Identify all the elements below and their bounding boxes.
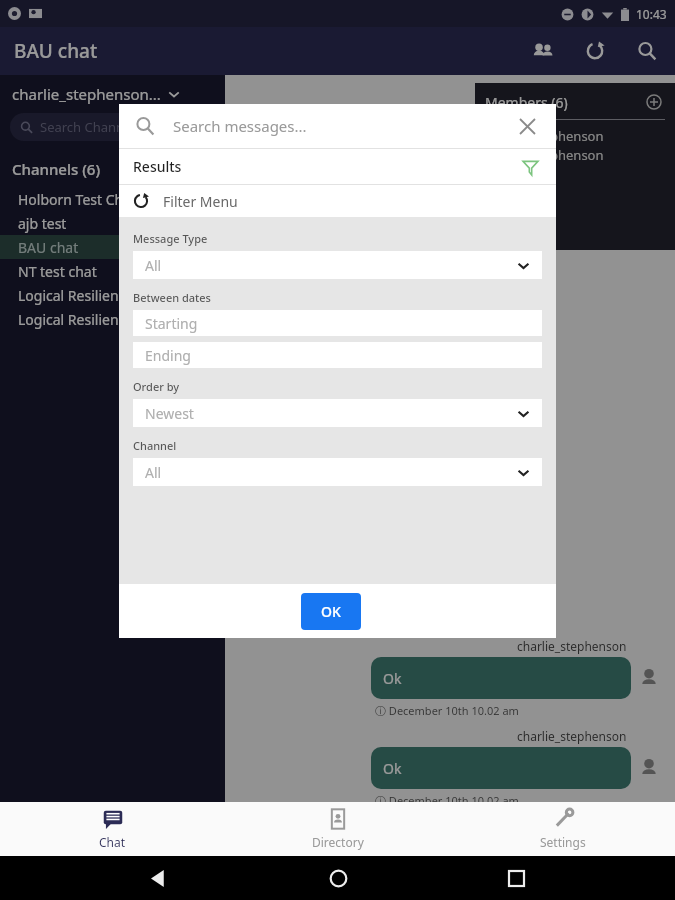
staticText: r_obrien (485, 184, 537, 202)
button[interactable]: Add member (643, 91, 665, 113)
button[interactable]: Results (119, 149, 556, 184)
staticText: charlie_stephenson (485, 146, 604, 164)
staticText: Channel (133, 438, 177, 453)
staticText: Ok (383, 669, 402, 688)
button[interactable]: r_obrien (485, 183, 665, 202)
staticText: Directory (312, 834, 364, 850)
button[interactable]: Holborn Test Chat (0, 187, 225, 211)
button[interactable]: Directory (225, 802, 450, 856)
button[interactable]: ajb test (0, 211, 225, 235)
button[interactable]: Members (527, 35, 559, 67)
button[interactable]: Newest (133, 399, 542, 427)
staticText: All (145, 463, 517, 482)
staticText: Logical Resilience (18, 310, 134, 329)
button[interactable]: Home (319, 859, 357, 897)
button[interactable]: Starting (133, 310, 542, 336)
button[interactable]: Filter (518, 155, 542, 179)
staticText: Ok (383, 759, 402, 778)
button[interactable]: NT test chat (0, 259, 225, 283)
staticText: ajb test (18, 214, 67, 233)
staticText: charlie_stephenson (517, 638, 627, 654)
button[interactable]: Settings (450, 802, 675, 856)
staticText: Holborn Test Chat (18, 190, 137, 209)
button[interactable]: Filter Menu (119, 185, 556, 217)
staticText: NT test chat (18, 262, 97, 281)
staticText: ⓘ December 10th 10.02 am (375, 703, 519, 718)
staticText: 10:43 (636, 6, 667, 22)
staticText: BAU chat (14, 38, 98, 64)
button[interactable]: OK (301, 593, 361, 630)
staticText: Chat (99, 834, 126, 850)
button[interactable]: All (133, 458, 542, 486)
staticText: s_mahiar (485, 203, 541, 221)
button[interactable]: Recents (497, 859, 535, 897)
button[interactable]: charlie_stephenson... (0, 75, 225, 113)
button[interactable]: Ok (371, 747, 631, 789)
button[interactable]: All (133, 251, 542, 279)
button[interactable]: ... (485, 221, 665, 240)
button[interactable]: Ok (371, 657, 631, 699)
staticText: Order by (133, 379, 180, 394)
staticText: ⓘ December 10th 10.02 am (375, 793, 519, 808)
button[interactable]: Search Channels (10, 113, 215, 141)
staticText: Logical Resilience (18, 286, 134, 305)
staticText: Message Type (133, 231, 208, 246)
staticText: Results (133, 157, 518, 176)
staticText: All (145, 256, 517, 275)
staticText: Settings (540, 834, 586, 850)
staticText: BAU chat (18, 238, 79, 257)
button[interactable]: a_bell (485, 164, 665, 183)
staticText: OK (321, 602, 341, 621)
button[interactable]: Logical Resilience (0, 283, 225, 307)
staticText: Newest (145, 404, 517, 423)
staticText: Channels (6) (12, 159, 101, 179)
button[interactable]: charlie_stephenson (485, 126, 665, 145)
staticText: Filter Menu (163, 192, 238, 211)
button[interactable]: Close (514, 113, 540, 139)
staticText: Between dates (133, 290, 211, 305)
staticText: Search messages... (173, 116, 514, 136)
button[interactable]: BAU chat (0, 235, 225, 259)
staticText: Members (6) (485, 93, 643, 112)
button[interactable]: Attach (237, 855, 585, 889)
staticText: Ending (145, 346, 191, 365)
button[interactable]: Search (631, 35, 663, 67)
button[interactable]: Back (140, 859, 178, 897)
staticText: Search Channels (40, 118, 142, 136)
button[interactable]: Search messages... (119, 104, 556, 148)
button[interactable]: charlie_stephenson (485, 145, 665, 164)
staticText: ⓘ December 10th 9:5 (546, 80, 669, 96)
button[interactable]: s_mahiar (485, 202, 665, 221)
staticText: Starting (145, 314, 198, 333)
button[interactable]: Chat (0, 802, 225, 856)
button[interactable]: Refresh (579, 35, 611, 67)
staticText: charlie_stephenson... (12, 84, 161, 104)
staticText: charlie_stephenson (485, 127, 604, 145)
button[interactable]: Ending (133, 342, 542, 368)
staticText: charlie_stephenson (517, 728, 627, 744)
button[interactable]: Attach (237, 855, 273, 889)
button[interactable]: Logical Resilience (0, 307, 225, 331)
